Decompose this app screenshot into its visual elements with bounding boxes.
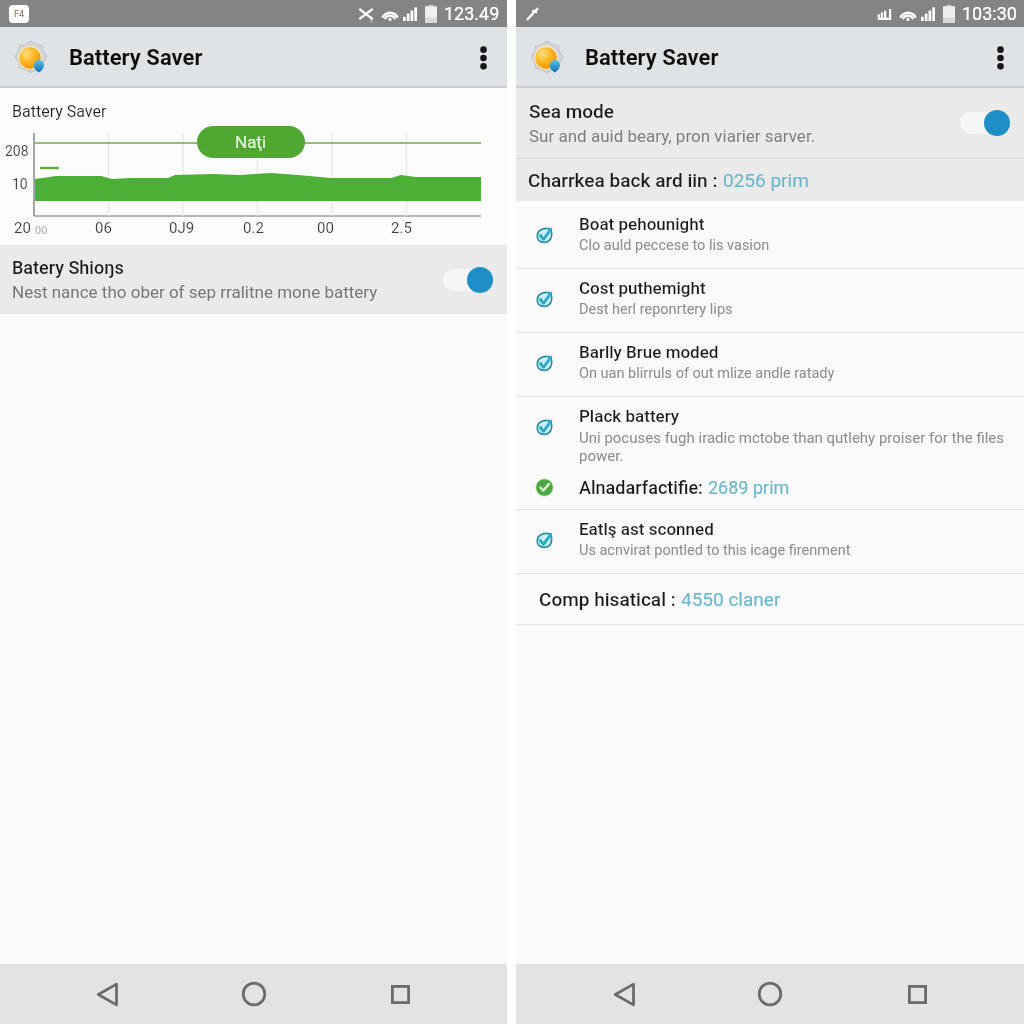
staticText: Uni pocuses fugh iradic mctobe than qutl… [579, 429, 1010, 465]
staticText: Clo auld peccese to lis vasion [579, 237, 770, 254]
button[interactable]: Back [585, 964, 663, 1024]
staticText: 123.49 [444, 3, 500, 24]
staticText: Dest herl reponrtery lips [579, 301, 733, 318]
staticText: 06 [95, 219, 112, 237]
button[interactable]: Recent apps [361, 964, 439, 1024]
staticText: 0.2 [243, 219, 264, 237]
button[interactable]: More options [977, 35, 1023, 81]
staticText: Eatlş ast sconned [579, 519, 714, 539]
staticText: 208 [5, 143, 29, 159]
button[interactable]: Recent apps [878, 964, 956, 1024]
staticText: F4 [14, 9, 25, 20]
button[interactable]: Sea mode [516, 88, 1024, 158]
staticText: Battery Saver [12, 102, 107, 121]
staticText: 0256 prim [723, 169, 809, 191]
staticText: 4550 claner [681, 588, 781, 610]
staticText: 20 [14, 219, 31, 237]
staticText: Sur and auid beary, pron viarier sarver. [529, 126, 816, 146]
staticText: Plack battery [579, 406, 680, 426]
staticText: Comp hisatical : [539, 588, 681, 610]
button[interactable]: Comp hisatical : [516, 574, 1024, 624]
staticText: 0J9 [169, 219, 195, 237]
staticText: Charrkea back ard iin : [528, 169, 723, 191]
staticText: Nest nance tho ober of sep rralitne mone… [12, 282, 378, 302]
button[interactable]: Naţi [197, 126, 305, 158]
staticText: On uan blirruls of out mlize andle ratad… [579, 365, 835, 382]
button[interactable]: Back [68, 964, 146, 1024]
staticText: 2.5 [391, 219, 412, 237]
staticText: 00 [317, 219, 334, 237]
button[interactable]: Cost puthemight [516, 269, 1024, 333]
staticText: Barlly Brue moded [579, 342, 719, 362]
staticText: Us acnvirat pontled to this icage firenm… [579, 542, 851, 559]
staticText: Battery Saver [69, 45, 203, 71]
staticText: Alnadarfactifie: [579, 477, 708, 498]
button[interactable]: More options [460, 35, 506, 81]
staticText: 2689 prim [708, 477, 790, 498]
staticText: Cost puthemight [579, 278, 706, 298]
button[interactable]: Plack battery [516, 397, 1024, 510]
staticText: Naţi [235, 132, 267, 152]
button[interactable]: Batery Shioŋs [0, 245, 507, 314]
staticText: 10 [12, 176, 28, 192]
button[interactable]: Home [731, 964, 809, 1024]
staticText: Batery Shioŋs [12, 257, 124, 278]
staticText: Battery Saver [585, 45, 719, 71]
staticText: Sea mode [529, 100, 614, 122]
button[interactable]: Home [215, 964, 293, 1024]
staticText: Boat pehounight [579, 214, 705, 234]
button[interactable]: Barlly Brue moded [516, 333, 1024, 397]
button[interactable]: Boat pehounight [516, 205, 1024, 269]
button[interactable]: Eatlş ast sconned [516, 510, 1024, 574]
staticText: 00 [35, 224, 48, 237]
button[interactable]: Charrkea back ard iin : [516, 159, 1024, 201]
staticText: 103:30 [962, 3, 1017, 24]
